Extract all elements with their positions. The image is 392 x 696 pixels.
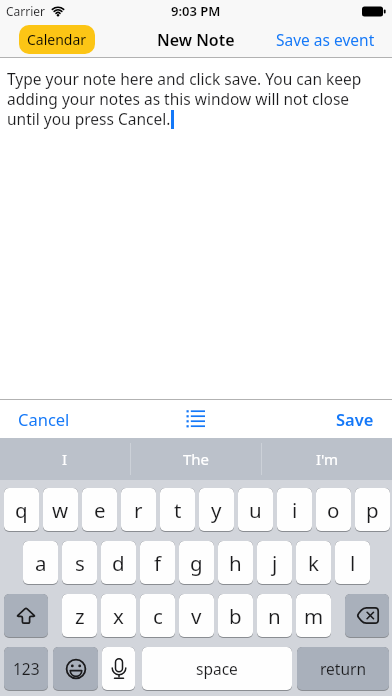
staticText: e (94, 496, 106, 524)
button[interactable]: x (101, 594, 136, 638)
button[interactable] (53, 647, 98, 691)
button[interactable]: j (257, 541, 292, 585)
button[interactable]: I (0, 438, 130, 480)
button[interactable]: Calendar (19, 25, 95, 54)
button[interactable]: y (199, 488, 234, 532)
button[interactable]: n (257, 594, 292, 638)
staticText: z (75, 602, 85, 630)
button[interactable]: a (23, 541, 58, 585)
staticText: a (35, 549, 47, 577)
button[interactable]: o (316, 488, 351, 532)
staticText: o (327, 496, 340, 524)
staticText: n (268, 602, 281, 630)
button[interactable]: space (142, 647, 292, 691)
button[interactable]: u (238, 488, 273, 532)
button[interactable]: w (43, 488, 78, 532)
button[interactable] (4, 594, 48, 638)
button[interactable] (345, 594, 389, 638)
button[interactable]: s (62, 541, 97, 585)
button[interactable]: e (82, 488, 117, 532)
staticText: l (350, 549, 356, 577)
staticText: 123 (13, 658, 40, 679)
staticText: g (190, 549, 203, 577)
staticText: p (366, 496, 379, 524)
staticText: 9:03 PM (171, 2, 221, 20)
button[interactable]: 123 (4, 647, 48, 691)
button[interactable]: q (4, 488, 39, 532)
staticText: The (183, 449, 210, 469)
staticText: b (229, 602, 242, 630)
staticText: q (15, 496, 28, 524)
button[interactable]: p (355, 488, 390, 532)
staticText: f (154, 549, 162, 577)
staticText: i (292, 496, 298, 524)
button[interactable]: z (62, 594, 97, 638)
button[interactable]: return (297, 647, 389, 691)
button[interactable]: Save as event (276, 29, 375, 50)
button[interactable]: i (277, 488, 312, 532)
staticText: until you press Cancel. (7, 108, 171, 129)
staticText: k (308, 549, 319, 577)
staticText: v (191, 602, 202, 630)
staticText: I'm (316, 449, 339, 469)
button[interactable]: Save (336, 408, 374, 430)
staticText: m (304, 602, 324, 630)
staticText: y (211, 496, 222, 524)
button[interactable]: The (131, 438, 261, 480)
button[interactable]: b (218, 594, 253, 638)
button[interactable]: c (140, 594, 175, 638)
button[interactable]: h (218, 541, 253, 585)
button[interactable] (102, 647, 135, 691)
button[interactable]: m (296, 594, 331, 638)
staticText: Cancel (18, 408, 70, 430)
staticText: u (249, 496, 262, 524)
staticText: x (113, 602, 124, 630)
staticText: Save (336, 408, 374, 430)
staticText: c (153, 602, 163, 630)
button[interactable]: t (160, 488, 195, 532)
button[interactable]: d (101, 541, 136, 585)
staticText: d (112, 549, 125, 577)
staticText: Save as event (276, 29, 375, 50)
button[interactable]: l (335, 541, 370, 585)
button[interactable]: v (179, 594, 214, 638)
staticText: w (52, 496, 69, 524)
button[interactable]: k (296, 541, 331, 585)
staticText: s (75, 549, 85, 577)
button[interactable]: r (121, 488, 156, 532)
staticText: j (272, 549, 278, 577)
staticText: Calendar (27, 30, 87, 49)
staticText: r (134, 496, 143, 524)
button[interactable]: g (179, 541, 214, 585)
staticText: return (320, 658, 366, 679)
staticText: t (174, 496, 182, 524)
button[interactable]: Cancel (18, 408, 70, 430)
staticText: New Note (157, 29, 235, 51)
button[interactable]: I'm (262, 438, 392, 480)
button[interactable] (186, 409, 206, 429)
staticText: space (196, 658, 238, 679)
staticText: h (229, 549, 242, 577)
button[interactable]: f (140, 541, 175, 585)
staticText: Type your note here and click save. You … (7, 68, 362, 89)
staticText: Carrier (6, 3, 46, 19)
staticText: adding your notes as this window will no… (7, 88, 350, 109)
staticText: I (62, 449, 68, 469)
